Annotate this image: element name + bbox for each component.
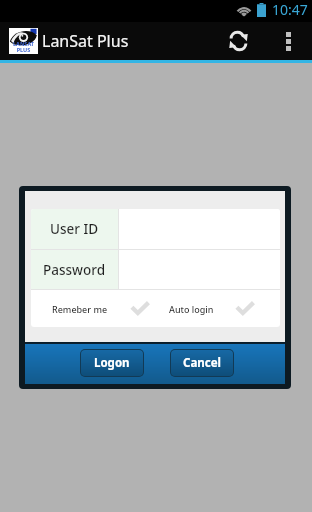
staticText: Password — [43, 261, 106, 279]
staticText: Remeber me — [52, 303, 108, 315]
button[interactable]: User ID — [31, 209, 118, 249]
button[interactable]: Logon — [81, 350, 143, 376]
button[interactable]: More options — [270, 22, 306, 60]
staticText: Cancel — [183, 355, 221, 371]
button[interactable]: Cancel — [171, 350, 233, 376]
button[interactable]: Refresh — [218, 22, 259, 60]
button[interactable]: Password — [31, 250, 118, 289]
staticText: Auto login — [169, 303, 214, 315]
button[interactable]: Auto login — [163, 290, 280, 327]
staticText: Logon — [94, 355, 130, 371]
button[interactable]: Remeber me — [46, 290, 163, 327]
staticText: User ID — [50, 220, 99, 238]
staticText: 10:47 — [272, 0, 308, 19]
staticText: LanSat Plus — [42, 30, 129, 52]
staticText: LANSAT PLUS — [13, 40, 34, 53]
